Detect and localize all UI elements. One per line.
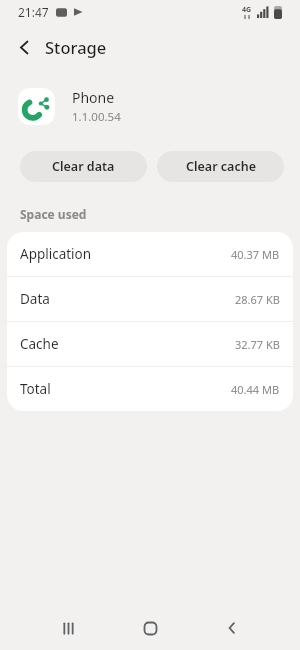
button[interactable]: Total bbox=[20, 367, 280, 411]
staticText: 21:47 bbox=[18, 4, 49, 20]
staticText: Clear data bbox=[52, 158, 115, 175]
button[interactable] bbox=[191, 606, 273, 650]
staticText: Data bbox=[20, 290, 50, 308]
staticText: 28.67 KB bbox=[235, 292, 280, 307]
staticText: Cache bbox=[20, 335, 59, 353]
button[interactable] bbox=[27, 606, 109, 650]
button[interactable]: Data bbox=[20, 277, 280, 321]
button[interactable] bbox=[17, 40, 32, 55]
staticText: 40.44 MB bbox=[231, 382, 280, 397]
staticText: 4G bbox=[242, 5, 252, 15]
staticText: Clear cache bbox=[186, 158, 256, 175]
button[interactable] bbox=[109, 606, 191, 650]
staticText: Phone bbox=[72, 88, 115, 107]
staticText: Total bbox=[20, 380, 51, 398]
button[interactable]: Application bbox=[20, 232, 280, 276]
button[interactable]: Clear cache bbox=[157, 151, 284, 182]
staticText: 1.1.00.54 bbox=[72, 109, 121, 125]
button[interactable]: Clear data bbox=[20, 151, 147, 182]
staticText: Application bbox=[20, 245, 92, 263]
staticText: 40.37 MB bbox=[231, 247, 280, 262]
staticText: 32.77 KB bbox=[235, 337, 280, 352]
staticText: Space used bbox=[20, 206, 87, 222]
button[interactable]: Cache bbox=[20, 322, 280, 366]
staticText: Storage bbox=[45, 36, 107, 58]
